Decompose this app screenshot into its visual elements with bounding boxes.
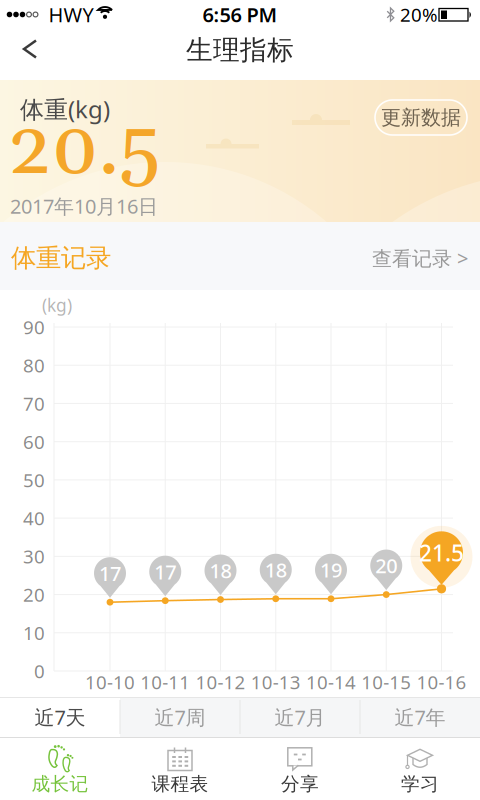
staticText: 体重记录 bbox=[11, 242, 111, 273]
staticText: 21.5 bbox=[419, 538, 464, 568]
staticText: 体重(kg) bbox=[20, 93, 110, 125]
button[interactable]: 分享 bbox=[240, 737, 360, 800]
staticText: 20.5 bbox=[8, 104, 159, 198]
staticText: 50 bbox=[23, 467, 45, 492]
staticText: HWY bbox=[48, 1, 93, 28]
staticText: 30 bbox=[23, 544, 45, 569]
staticText: 成长记 bbox=[31, 772, 88, 795]
staticText: 10-11 bbox=[140, 670, 190, 694]
staticText: 90 bbox=[23, 315, 45, 339]
staticText: 10-10 bbox=[85, 670, 135, 694]
staticText: 18 bbox=[265, 556, 287, 583]
staticText: 10-16 bbox=[416, 670, 466, 694]
staticText: 查看记录 > bbox=[372, 245, 468, 271]
staticText: 18 bbox=[209, 557, 231, 584]
staticText: 近7周 bbox=[154, 704, 205, 730]
staticText: 近7年 bbox=[394, 704, 445, 730]
button[interactable]: 近7周 bbox=[120, 697, 240, 737]
staticText: 生理指标 bbox=[186, 34, 294, 66]
staticText: 更新数据 bbox=[381, 105, 461, 130]
button[interactable]: Back bbox=[10, 26, 50, 71]
staticText: 学习 bbox=[401, 772, 439, 795]
staticText: 10-12 bbox=[195, 670, 245, 694]
staticText: 10 bbox=[23, 620, 45, 645]
staticText: 10-15 bbox=[361, 670, 411, 694]
staticText: 6:56 PM bbox=[202, 1, 277, 28]
staticText: 课程表 bbox=[151, 772, 208, 795]
staticText: 近7月 bbox=[274, 704, 325, 730]
button[interactable]: 学习 bbox=[360, 737, 480, 800]
staticText: 17 bbox=[99, 560, 121, 586]
staticText: 70 bbox=[23, 391, 45, 416]
button[interactable]: 成长记 bbox=[0, 737, 120, 800]
staticText: 17 bbox=[154, 558, 176, 585]
staticText: 10-14 bbox=[306, 670, 356, 694]
button[interactable]: 近7月 bbox=[240, 697, 360, 737]
button[interactable]: 更新数据 bbox=[375, 100, 467, 135]
staticText: 分享 bbox=[281, 772, 319, 795]
button[interactable]: 近7天 bbox=[0, 697, 120, 737]
staticText: 40 bbox=[23, 506, 45, 530]
staticText: 近7天 bbox=[34, 704, 85, 730]
staticText: 2017年10月16日 bbox=[10, 193, 158, 219]
staticText: 10-13 bbox=[251, 670, 301, 694]
staticText: 60 bbox=[23, 429, 45, 454]
staticText: 20 bbox=[375, 552, 397, 579]
button[interactable]: 课程表 bbox=[120, 737, 240, 800]
staticText: 0 bbox=[34, 659, 45, 683]
button[interactable]: 查看记录 > bbox=[364, 237, 476, 279]
staticText: 20% bbox=[400, 2, 438, 27]
staticText: 19 bbox=[320, 556, 342, 583]
staticText: 20 bbox=[23, 582, 45, 607]
staticText: (kg) bbox=[42, 293, 72, 316]
staticText: 80 bbox=[23, 353, 45, 378]
button[interactable]: 近7年 bbox=[360, 697, 480, 737]
